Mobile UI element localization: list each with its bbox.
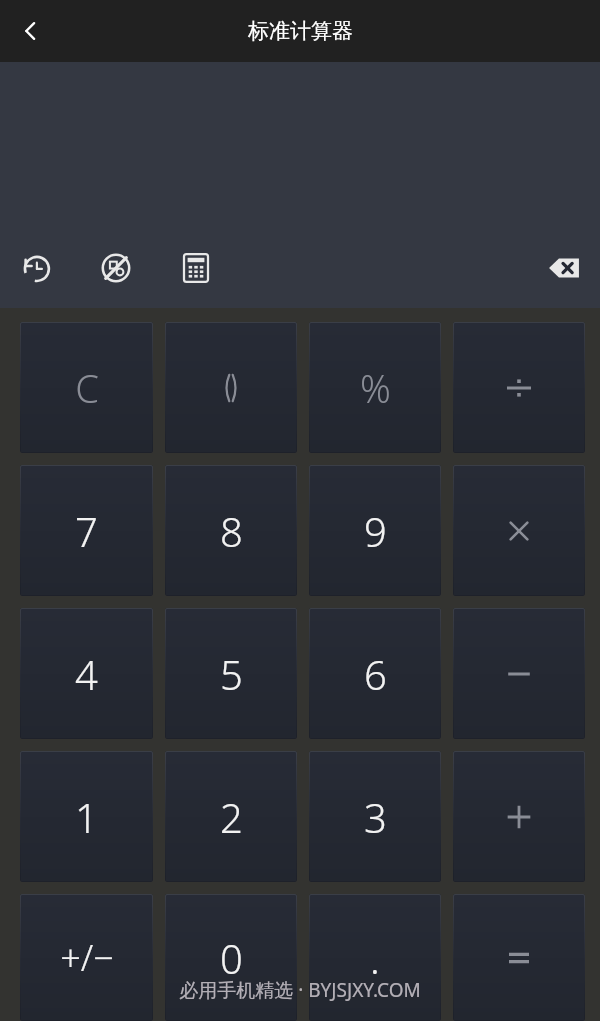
button[interactable]: 9 xyxy=(309,465,441,596)
button[interactable]: Delete xyxy=(534,238,594,298)
button[interactable] xyxy=(165,322,297,453)
staticText: 4 xyxy=(75,647,98,701)
staticText: 9 xyxy=(364,504,387,558)
button[interactable]: 5 xyxy=(165,608,297,739)
button[interactable]: 4 xyxy=(20,608,153,739)
button[interactable] xyxy=(453,465,585,596)
button[interactable] xyxy=(453,894,585,1021)
button[interactable]: Currency converter off xyxy=(86,238,146,298)
staticText: 8 xyxy=(220,504,243,558)
staticText: +/− xyxy=(60,933,114,982)
staticText: 7 xyxy=(75,504,98,558)
staticText: 3 xyxy=(364,790,387,844)
button[interactable]: 0 xyxy=(165,894,297,1021)
button[interactable]: C xyxy=(20,322,153,453)
staticText: . xyxy=(370,931,380,985)
button[interactable]: Scientific calculator xyxy=(166,238,226,298)
button[interactable]: 8 xyxy=(165,465,297,596)
staticText: 标准计算器 xyxy=(248,18,353,44)
button[interactable]: +/− xyxy=(20,894,153,1021)
button[interactable]: 7 xyxy=(20,465,153,596)
button[interactable]: 3 xyxy=(309,751,441,882)
button[interactable] xyxy=(453,608,585,739)
button[interactable]: 2 xyxy=(165,751,297,882)
button[interactable] xyxy=(453,322,585,453)
staticText: 必用手机精选 · BYJSJXY.COM xyxy=(179,977,421,1003)
staticText: 6 xyxy=(364,647,387,701)
staticText: 1 xyxy=(75,790,98,844)
button[interactable]: 6 xyxy=(309,608,441,739)
staticText: % xyxy=(360,362,391,414)
button[interactable]: History xyxy=(6,238,66,298)
button[interactable]: . xyxy=(309,894,441,1021)
button[interactable] xyxy=(453,751,585,882)
button[interactable]: 1 xyxy=(20,751,153,882)
button[interactable]: Back xyxy=(0,0,62,62)
staticText: C xyxy=(75,362,99,414)
staticText: 2 xyxy=(220,790,243,844)
button[interactable]: % xyxy=(309,322,441,453)
staticText: 0 xyxy=(220,931,243,985)
staticText: 5 xyxy=(220,647,243,701)
